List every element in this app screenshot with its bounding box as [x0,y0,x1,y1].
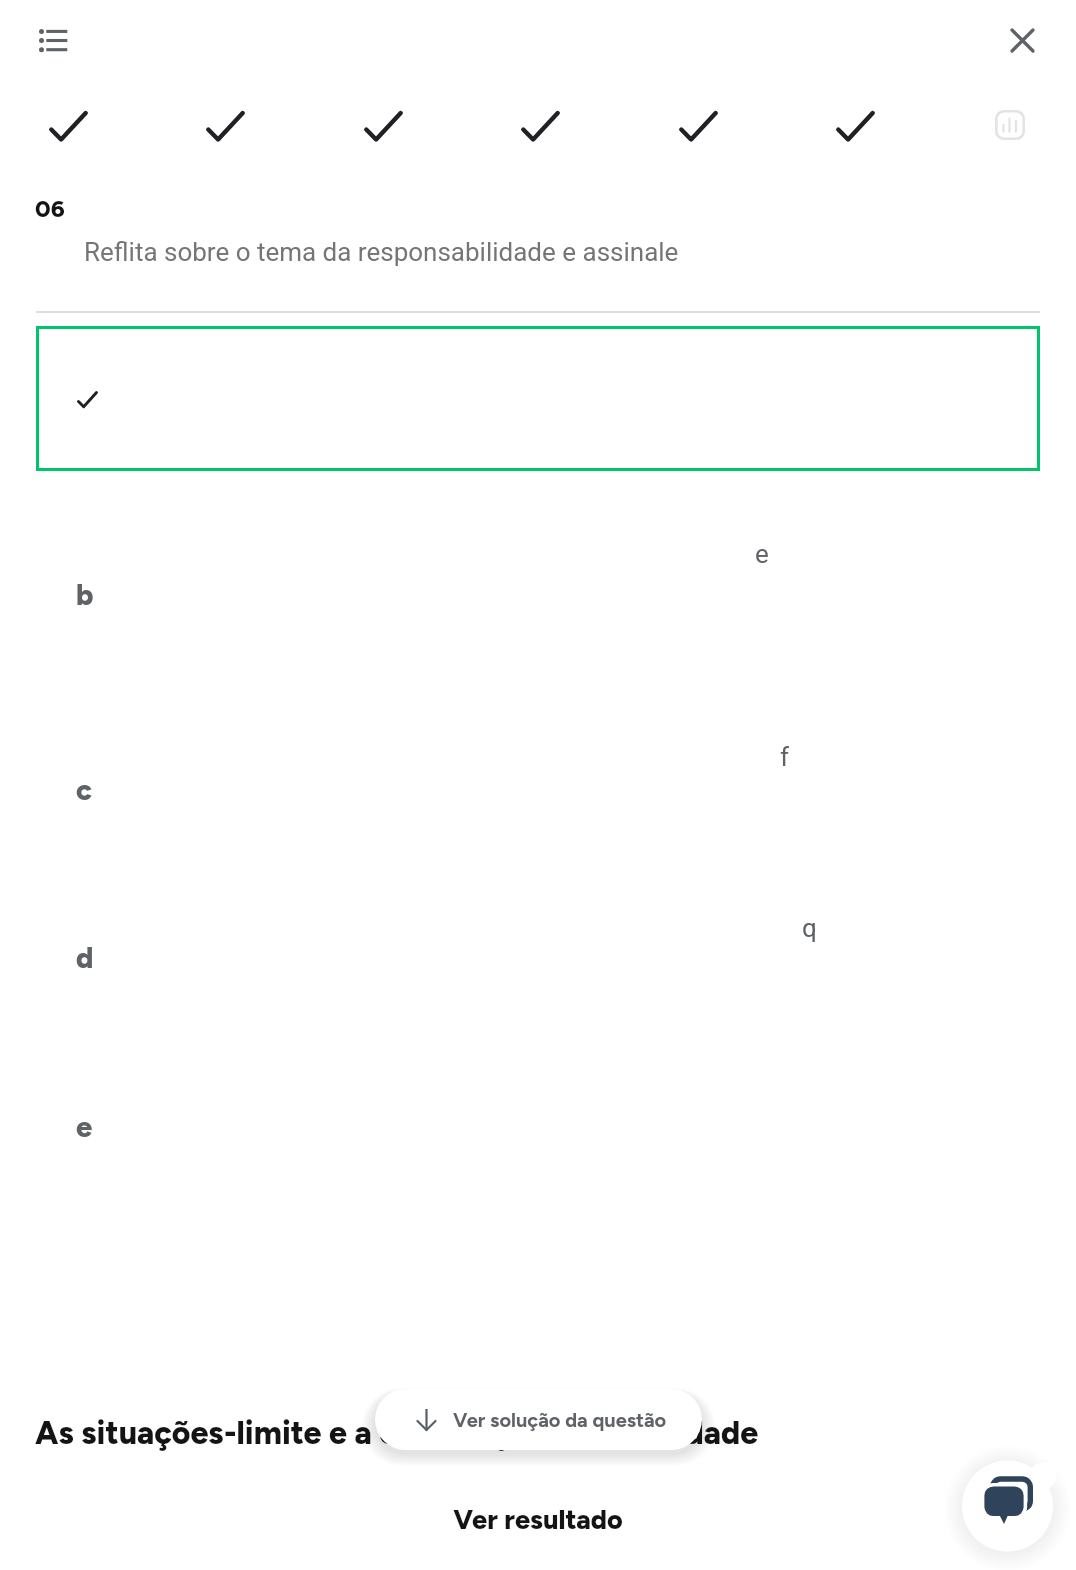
button[interactable]: Estatísticas [978,93,1042,157]
staticText: c [76,772,92,807]
staticText: b [76,577,94,612]
button[interactable]: Questão respondida [508,98,574,164]
button[interactable]: Ver resultado [0,1503,1076,1563]
staticText: As situações-limite e a construção da id… [35,1414,759,1452]
staticText: e [755,539,769,569]
staticText: d [76,940,94,975]
button[interactable]: Questão respondida [193,98,259,164]
button[interactable]: Questão respondida [823,98,889,164]
button[interactable]: Questão respondida [351,98,417,164]
staticText: q [802,913,817,943]
button[interactable]: Questão respondida [36,98,102,164]
button[interactable]: Questão respondida [666,98,732,164]
staticText: f [780,742,790,772]
button[interactable]: c [36,742,1040,822]
button[interactable]: b [36,547,1040,627]
button[interactable]: e [36,1079,1040,1159]
button[interactable]: Alternativa a (selecionada) [36,326,1040,471]
staticText: 06 [35,194,65,223]
staticText: Ver solução da questão [453,1408,667,1432]
button[interactable]: Lista de questões [21,10,85,74]
button[interactable]: Fechar [990,8,1054,72]
button[interactable]: d [36,910,1040,990]
staticText: e [76,1109,93,1144]
button[interactable]: Abrir chat de ajuda [950,1449,1065,1564]
staticText: Ver resultado [453,1503,623,1535]
button[interactable]: Ver solução da questão [375,1389,702,1450]
staticText: Reflita sobre o tema da responsabilidade… [84,237,679,267]
